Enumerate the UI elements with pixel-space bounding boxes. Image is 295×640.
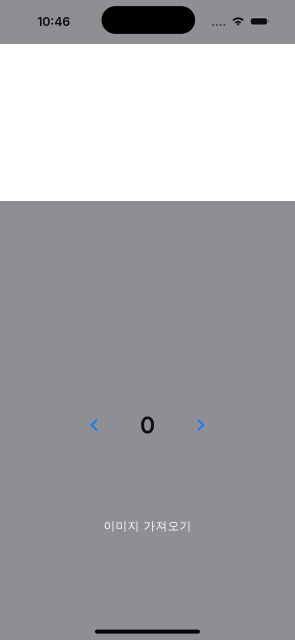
button[interactable]: Next image (179, 410, 223, 440)
staticText: 이미지 가져오기 (103, 519, 191, 533)
button[interactable]: Previous image (72, 410, 116, 440)
staticText: 0 (140, 411, 155, 439)
staticText: 10:46 (37, 14, 70, 29)
button[interactable]: 이미지 가져오기 (87, 510, 207, 542)
